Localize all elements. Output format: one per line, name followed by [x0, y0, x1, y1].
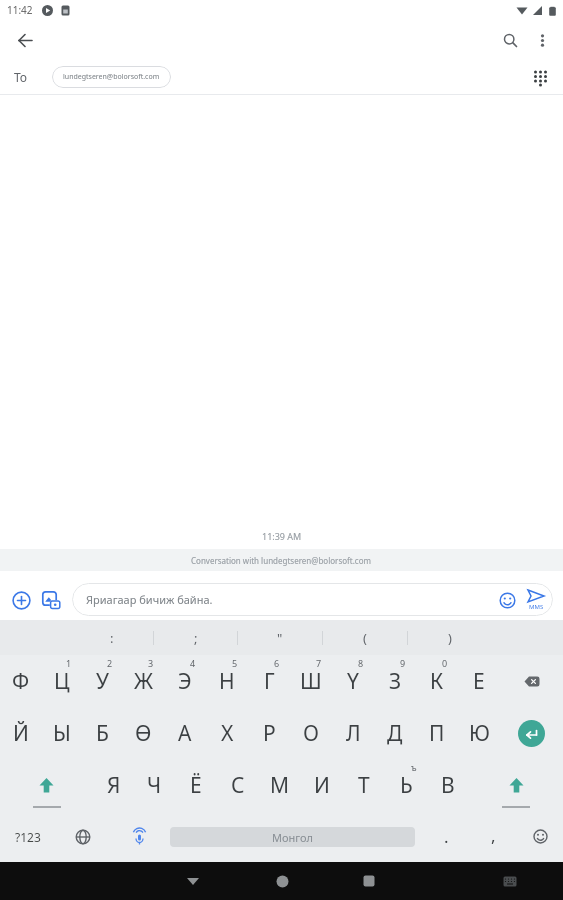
button[interactable]: ?123 [0, 811, 55, 862]
button[interactable] [8, 23, 42, 57]
staticText: Ч [147, 771, 162, 800]
button[interactable]: О [290, 707, 332, 759]
staticText: Ф [12, 667, 30, 696]
button[interactable]: Р [248, 707, 290, 759]
button[interactable]: Я [93, 759, 134, 811]
staticText: Ю [469, 719, 490, 748]
staticText: 9 [400, 657, 406, 669]
staticText: О [303, 719, 319, 748]
staticText: Л [346, 719, 361, 748]
staticText: Ж [134, 667, 154, 696]
button[interactable]: А [164, 707, 206, 759]
staticText: Ө [135, 719, 152, 748]
button[interactable] [527, 64, 553, 90]
button[interactable]: lundegtseren@bolorsoft.com [52, 66, 171, 88]
button[interactable]: Й [0, 707, 41, 759]
button[interactable]: Б [82, 707, 123, 759]
button[interactable]: В [427, 759, 469, 811]
staticText: К [430, 667, 444, 696]
button[interactable] [55, 811, 111, 862]
staticText: Ы [53, 719, 71, 748]
button[interactable]: И [301, 759, 343, 811]
staticText: А [178, 719, 192, 748]
button[interactable]: : [70, 620, 153, 655]
staticText: 3 [148, 657, 154, 669]
button[interactable]: Монгол [167, 811, 423, 862]
button[interactable]: К [416, 655, 458, 707]
staticText: Ь [400, 771, 413, 800]
button[interactable]: Яриагаар бичиж байна. [72, 583, 553, 616]
button[interactable]: Э [164, 655, 206, 707]
staticText: Д [387, 719, 403, 748]
button[interactable] [267, 866, 297, 896]
button[interactable]: , [469, 811, 517, 862]
staticText: Х [221, 719, 234, 748]
button[interactable]: З [374, 655, 416, 707]
staticText: lundegtseren@bolorsoft.com [63, 72, 160, 82]
button[interactable]: Х [206, 707, 248, 759]
button[interactable]: Ц [41, 655, 82, 707]
button[interactable] [8, 587, 34, 613]
button[interactable] [528, 26, 556, 54]
button[interactable] [500, 655, 563, 707]
staticText: 6 [274, 657, 280, 669]
staticText: С [231, 771, 245, 800]
staticText: ) [448, 629, 452, 647]
button[interactable]: Ш [290, 655, 332, 707]
staticText: 11:42 [7, 3, 33, 17]
button[interactable]: У [82, 655, 123, 707]
button[interactable]: Ж [123, 655, 164, 707]
staticText: Р [263, 719, 276, 748]
button[interactable] [495, 588, 519, 612]
button[interactable]: Е [458, 655, 500, 707]
button[interactable]: Ө [123, 707, 164, 759]
staticText: Ш [300, 667, 322, 696]
staticText: ; [194, 629, 198, 647]
button[interactable]: Н [206, 655, 248, 707]
button[interactable]: . [423, 811, 469, 862]
button[interactable]: Ф [0, 655, 41, 707]
button[interactable] [495, 25, 525, 55]
staticText: М [270, 771, 290, 800]
button[interactable]: MMS [527, 589, 545, 611]
button[interactable] [354, 866, 384, 896]
button[interactable]: Л [332, 707, 374, 759]
staticText: Я [107, 771, 121, 800]
button[interactable] [497, 868, 523, 894]
staticText: " [277, 629, 283, 647]
button[interactable]: Т [343, 759, 385, 811]
button[interactable]: Ч [134, 759, 175, 811]
button[interactable]: П [416, 707, 458, 759]
button[interactable]: Д [374, 707, 416, 759]
button[interactable] [38, 587, 64, 613]
button[interactable]: ) [408, 620, 492, 655]
button[interactable]: Ы [41, 707, 82, 759]
button[interactable] [469, 759, 563, 811]
staticText: : [110, 629, 114, 647]
button[interactable]: Ю [458, 707, 500, 759]
button[interactable]: Ь [385, 759, 427, 811]
button[interactable] [178, 866, 208, 896]
staticText: , [491, 824, 496, 847]
button[interactable] [0, 759, 93, 811]
button[interactable] [111, 811, 167, 862]
staticText: MMS [529, 603, 544, 611]
button[interactable]: М [259, 759, 301, 811]
button[interactable]: " [238, 620, 322, 655]
button[interactable]: Ү [332, 655, 374, 707]
staticText: Ё [190, 771, 202, 800]
staticText: Е [473, 667, 485, 696]
button[interactable]: ; [154, 620, 237, 655]
button[interactable] [517, 811, 563, 862]
button[interactable]: ( [323, 620, 407, 655]
button[interactable]: Г [248, 655, 290, 707]
staticText: З [389, 667, 402, 696]
staticText: 8 [358, 657, 364, 669]
staticText: 1 [66, 657, 72, 669]
button[interactable]: С [217, 759, 259, 811]
button[interactable]: Ё [175, 759, 217, 811]
staticText: 5 [232, 657, 238, 669]
staticText: Э [178, 667, 192, 696]
button[interactable] [500, 707, 563, 759]
staticText: В [441, 771, 455, 800]
